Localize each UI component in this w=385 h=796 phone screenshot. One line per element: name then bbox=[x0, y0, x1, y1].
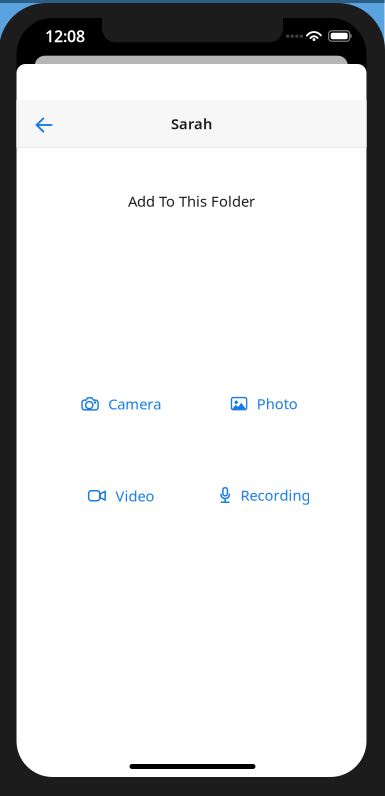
button[interactable]: Camera bbox=[74, 385, 168, 423]
button[interactable]: Video bbox=[81, 477, 161, 514]
staticText: Photo bbox=[257, 394, 298, 413]
staticText: Add To This Folder bbox=[128, 191, 255, 211]
button[interactable]: Back bbox=[23, 105, 65, 145]
staticText: Recording bbox=[240, 485, 310, 505]
staticText: 12:08 bbox=[45, 25, 85, 47]
staticText: Camera bbox=[108, 394, 161, 414]
button[interactable]: Photo bbox=[224, 385, 305, 422]
staticText: Sarah bbox=[171, 114, 212, 133]
button[interactable]: Recording bbox=[212, 476, 317, 514]
staticText: Video bbox=[115, 486, 154, 505]
